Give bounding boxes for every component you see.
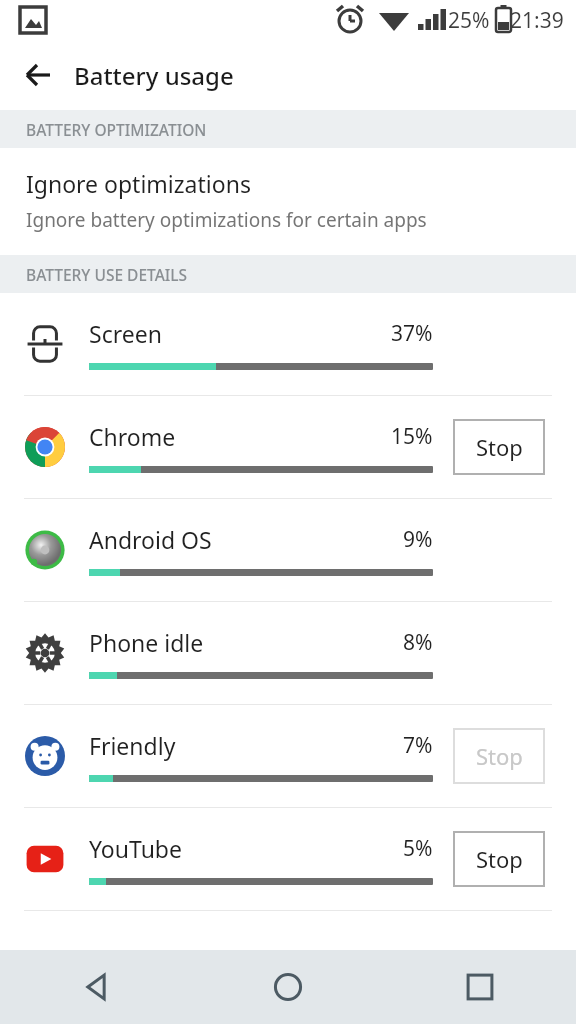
staticText: Stop <box>476 741 523 771</box>
staticText: Stop <box>476 844 523 874</box>
button[interactable]: Stop <box>453 419 545 475</box>
staticText: 9% <box>403 525 433 554</box>
button[interactable]: Stop <box>453 831 545 887</box>
button[interactable]: Chrome <box>0 396 576 498</box>
staticText: Ignore battery optimizations for certain… <box>26 207 427 233</box>
staticText: 15% <box>391 422 433 451</box>
button[interactable]: Stop <box>453 728 545 784</box>
button[interactable]: Recent apps <box>384 950 576 1024</box>
staticText: 8% <box>403 628 433 657</box>
button[interactable]: Ignore optimizations <box>0 148 576 255</box>
staticText: Stop <box>476 432 523 462</box>
staticText: Ignore optimizations <box>26 168 251 199</box>
button[interactable]: Back <box>0 950 192 1024</box>
staticText: 21:39 <box>510 6 564 35</box>
staticText: Phone idle <box>89 627 204 658</box>
staticText: BATTERY OPTIMIZATION <box>26 119 207 140</box>
button[interactable]: Home <box>192 950 384 1024</box>
button[interactable]: YouTube <box>0 808 576 910</box>
staticText: 25% <box>448 6 490 35</box>
button[interactable]: Phone idle <box>0 602 576 704</box>
button[interactable]: Screen <box>0 293 576 395</box>
staticText: YouTube <box>89 833 182 864</box>
staticText: 37% <box>391 319 433 348</box>
staticText: Chrome <box>89 421 176 452</box>
button[interactable]: Back <box>14 51 62 99</box>
button[interactable]: Android OS <box>0 499 576 601</box>
staticText: 5% <box>403 834 433 863</box>
button[interactable]: Friendly <box>0 705 576 807</box>
staticText: Battery usage <box>74 59 234 92</box>
staticText: 7% <box>403 731 433 760</box>
staticText: Android OS <box>89 524 212 555</box>
staticText: BATTERY USE DETAILS <box>26 264 188 285</box>
staticText: Screen <box>89 318 162 349</box>
staticText: Friendly <box>89 730 176 761</box>
